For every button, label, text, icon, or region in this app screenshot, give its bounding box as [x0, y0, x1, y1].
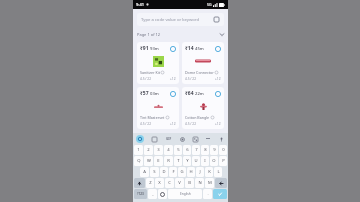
button[interactable]: 1	[134, 145, 143, 155]
staticText: GIF	[166, 137, 172, 141]
staticText: 0	[222, 147, 225, 153]
button[interactable]: B	[185, 178, 194, 188]
staticText: Type a code value or keyword	[141, 17, 200, 23]
button[interactable]: 0	[219, 145, 227, 155]
button[interactable]: ₹57	[137, 87, 179, 129]
button[interactable]: C	[165, 178, 174, 188]
staticText: Y	[186, 158, 189, 164]
button[interactable]: Backspace	[215, 178, 227, 188]
staticText: 45m	[195, 46, 204, 52]
staticText: M	[208, 180, 212, 186]
staticText: 4.5 / 22	[140, 122, 151, 126]
staticText: Q	[137, 158, 141, 164]
staticText: L	[217, 169, 220, 175]
button[interactable]: Shift	[134, 178, 145, 188]
staticText: +12	[170, 77, 176, 81]
staticText: F	[172, 169, 175, 175]
button[interactable]: J	[196, 167, 204, 177]
button[interactable]: 8	[201, 145, 209, 155]
button[interactable]: 2	[144, 145, 153, 155]
staticText: 93m	[150, 46, 159, 52]
button[interactable]: E	[154, 156, 163, 166]
button[interactable]: Type a code value or keyword	[137, 13, 224, 26]
button[interactable]: X	[155, 178, 164, 188]
button[interactable]: Add to list	[214, 90, 221, 97]
button[interactable]: Voice input	[217, 135, 225, 143]
button[interactable]: D	[160, 167, 168, 177]
staticText: C	[168, 180, 171, 186]
staticText: O	[212, 158, 216, 164]
staticText: Page 1 of 12	[137, 32, 161, 37]
button[interactable]: Y	[183, 156, 191, 166]
staticText: A	[143, 169, 146, 175]
staticText: ₹91	[140, 45, 149, 52]
staticText: +12	[215, 77, 221, 81]
button[interactable]: K	[205, 167, 213, 177]
button[interactable]: Q	[134, 156, 143, 166]
button[interactable]: G	[178, 167, 186, 177]
button[interactable]: P	[219, 156, 227, 166]
staticText: 22m	[195, 91, 204, 97]
button[interactable]: U	[192, 156, 200, 166]
button[interactable]: 3	[154, 145, 163, 155]
staticText: 5G	[207, 2, 212, 7]
button[interactable]: ₹14	[182, 42, 224, 84]
staticText: 4.5 / 22	[140, 77, 151, 81]
staticText: 4.5 / 22	[185, 122, 196, 126]
button[interactable]: S	[150, 167, 159, 177]
button[interactable]: Enter	[213, 189, 227, 199]
button[interactable]: Google	[136, 135, 144, 143]
button[interactable]: O	[210, 156, 218, 166]
staticText: Tint Masterset	[140, 115, 165, 120]
staticText: +12	[170, 122, 176, 126]
button[interactable]: ,	[148, 189, 157, 199]
button[interactable]: Scan code	[213, 16, 220, 23]
staticText: 6	[186, 147, 189, 153]
staticText: D	[162, 169, 166, 175]
button[interactable]: Page 1 of 12	[137, 30, 224, 39]
button[interactable]: ?123	[134, 189, 147, 199]
staticText: W	[147, 158, 151, 164]
staticText: Cotton Bangle	[185, 115, 210, 120]
button[interactable]: GIF	[164, 135, 173, 142]
button[interactable]: N	[195, 178, 204, 188]
button[interactable]: M	[205, 178, 214, 188]
staticText: P	[222, 158, 225, 164]
button[interactable]: Z	[146, 178, 154, 188]
button[interactable]: English	[168, 189, 202, 199]
button[interactable]: A	[140, 167, 149, 177]
button[interactable]: Add to list	[214, 45, 221, 52]
staticText: +12	[215, 122, 221, 126]
staticText: 1	[137, 147, 140, 153]
button[interactable]: W	[144, 156, 153, 166]
button[interactable]: T	[174, 156, 182, 166]
button[interactable]: Add to list	[169, 45, 176, 52]
button[interactable]: Clipboard	[150, 135, 158, 143]
staticText: .	[207, 191, 209, 197]
button[interactable]: I	[201, 156, 209, 166]
button[interactable]: 5	[174, 145, 182, 155]
staticText: 9	[213, 147, 216, 153]
button[interactable]: Stickers	[191, 135, 199, 143]
button[interactable]: 6	[183, 145, 191, 155]
button[interactable]: V	[175, 178, 184, 188]
button[interactable]: .	[203, 189, 212, 199]
button[interactable]: Add to list	[169, 90, 176, 97]
staticText: Sanitizer Kit	[140, 70, 160, 75]
button[interactable]: L	[214, 167, 222, 177]
staticText: G	[180, 169, 184, 175]
staticText: 2	[147, 147, 150, 153]
button[interactable]: R	[164, 156, 173, 166]
button[interactable]: 4	[164, 145, 173, 155]
button[interactable]: 7	[192, 145, 200, 155]
button[interactable]: Settings	[178, 135, 186, 143]
button[interactable]: F	[169, 167, 177, 177]
staticText: English	[180, 192, 191, 196]
button[interactable]: H	[187, 167, 195, 177]
button[interactable]: ₹64	[182, 87, 224, 129]
button[interactable]: ₹91	[137, 42, 179, 84]
button[interactable]: 9	[210, 145, 218, 155]
button[interactable]: Emoji	[158, 189, 167, 199]
staticText: U	[194, 158, 198, 164]
button[interactable]: More	[204, 135, 212, 142]
